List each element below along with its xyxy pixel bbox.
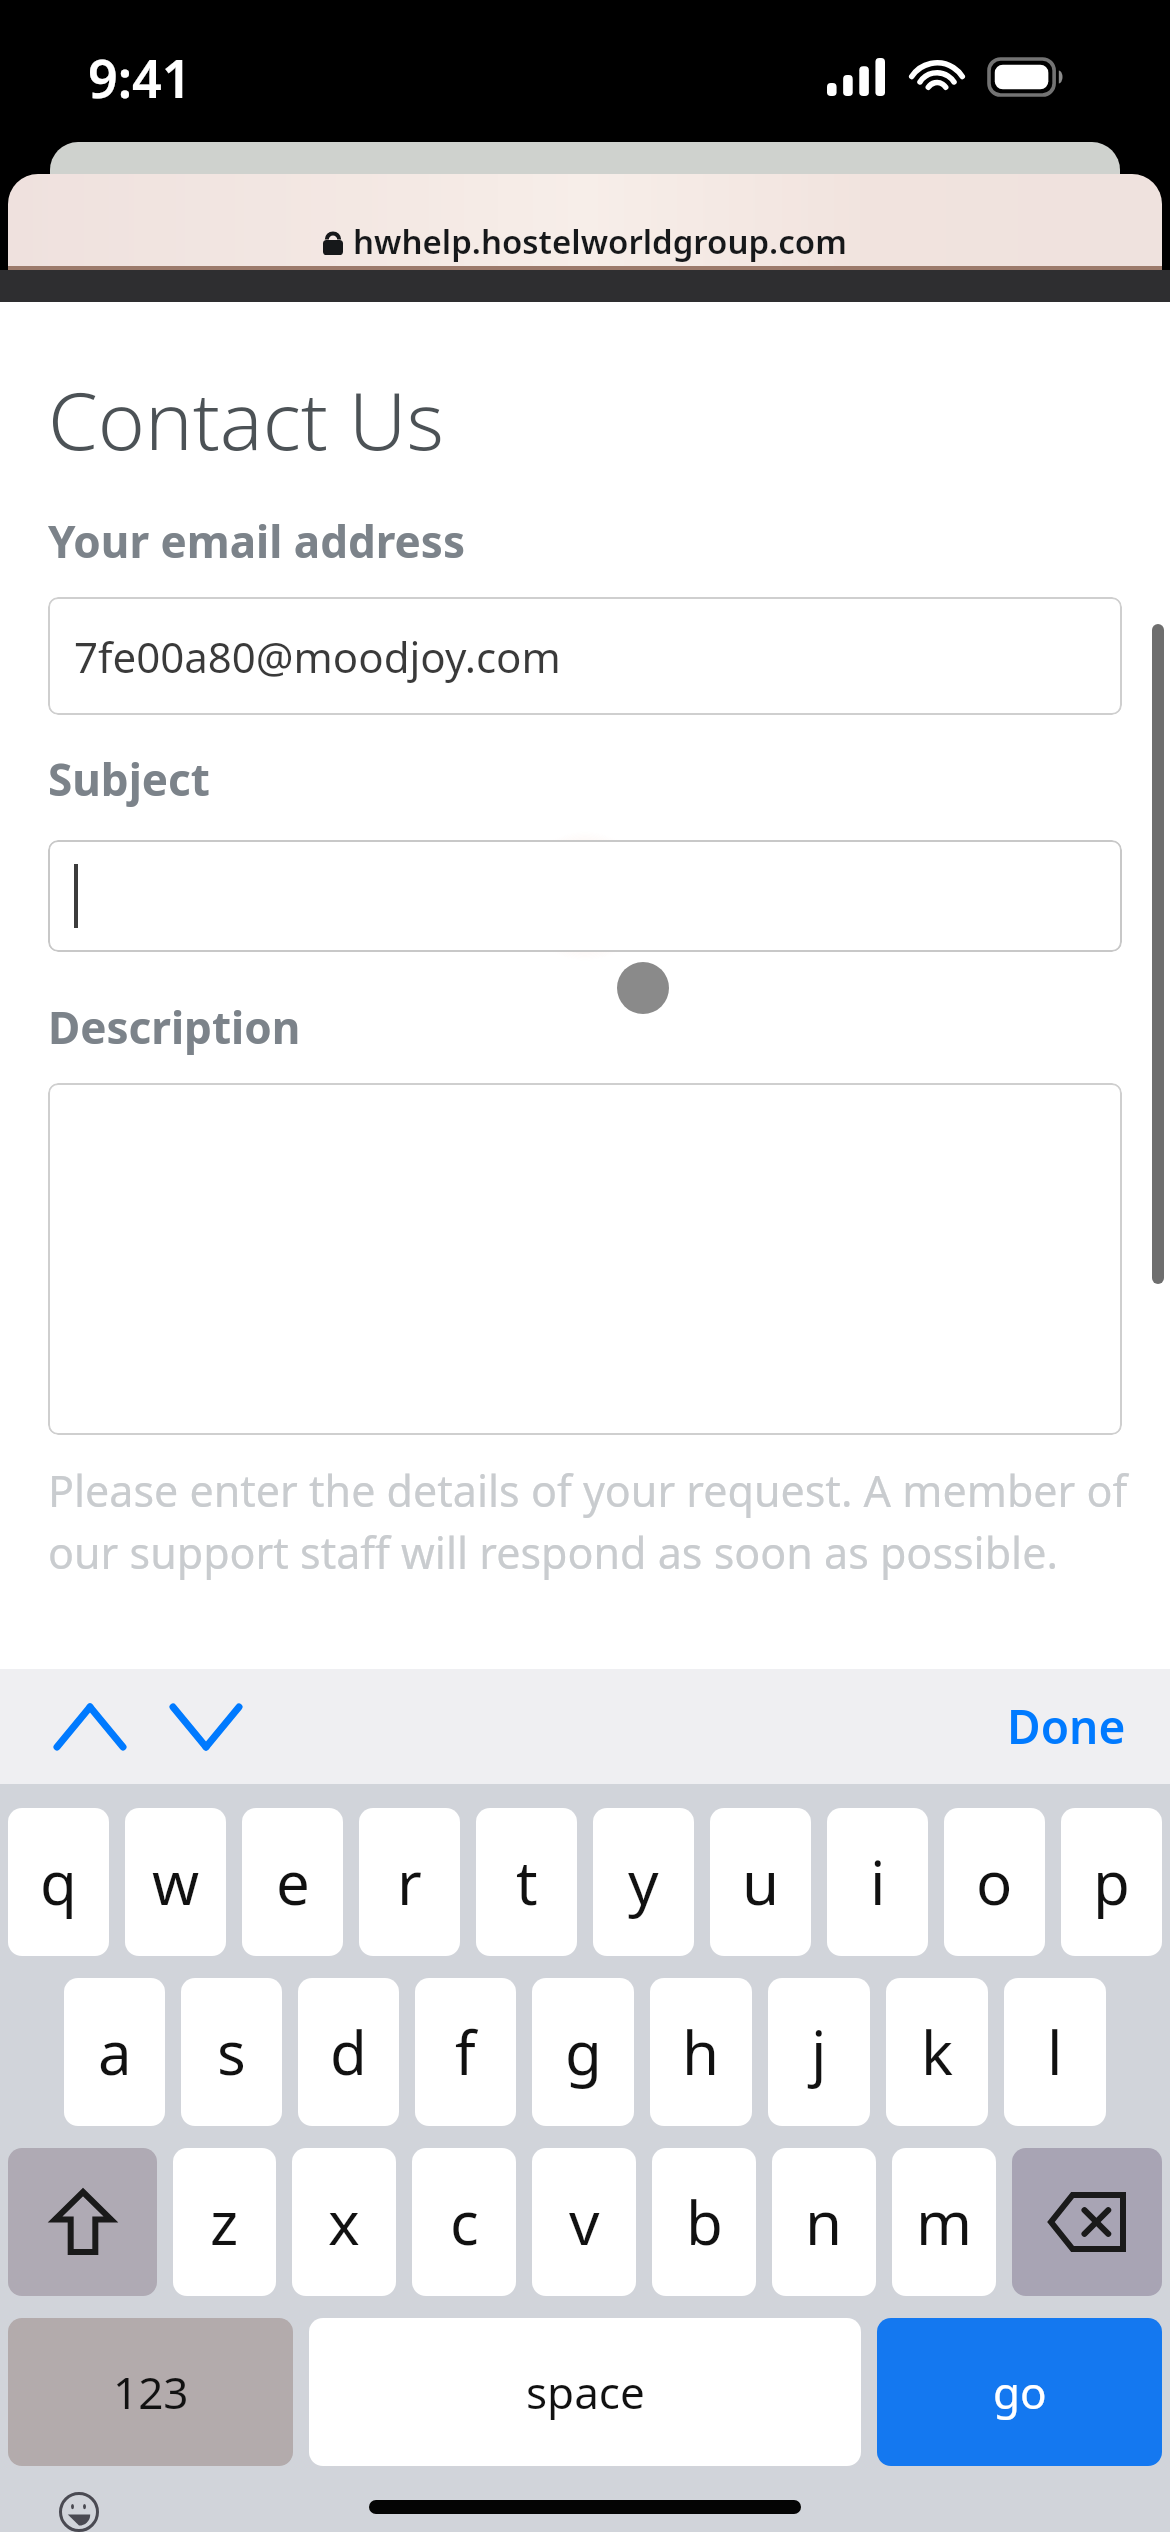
staticText: p	[1093, 1841, 1130, 1923]
button[interactable]: y	[593, 1808, 694, 1956]
button[interactable]: x	[292, 2148, 396, 2296]
button[interactable]: v	[532, 2148, 636, 2296]
button[interactable]: o	[944, 1808, 1045, 1956]
button[interactable]: i	[827, 1808, 928, 1956]
button[interactable]: f	[415, 1978, 516, 2126]
staticText: o	[976, 1841, 1013, 1923]
staticText: Contact Us	[48, 364, 444, 473]
button[interactable]: p	[1061, 1808, 1162, 1956]
button[interactable]: a	[64, 1978, 165, 2126]
button[interactable]: Emoji keyboard	[56, 2492, 128, 2532]
button[interactable]: d	[298, 1978, 399, 2126]
button[interactable]: Shift	[8, 2148, 157, 2296]
staticText: go	[993, 2362, 1047, 2422]
staticText: h	[682, 2011, 720, 2093]
staticText: Subject	[48, 749, 210, 809]
staticText: g	[565, 2011, 602, 2093]
staticText: t	[516, 1841, 538, 1923]
button[interactable]: Backspace	[1012, 2148, 1162, 2296]
button[interactable]: r	[359, 1808, 460, 1956]
button[interactable]: space	[309, 2318, 861, 2466]
staticText: 7fe00a80@moodjoy.com	[74, 628, 561, 685]
button[interactable]: Address bar hwhelp.hostelworldgroup.com	[8, 174, 1162, 270]
button[interactable]: s	[181, 1978, 282, 2126]
button[interactable]	[48, 1083, 1122, 1435]
staticText: 9:41	[88, 42, 192, 113]
staticText: u	[742, 1841, 780, 1923]
staticText: Description	[48, 997, 301, 1057]
button[interactable]: u	[710, 1808, 811, 1956]
button[interactable]: e	[242, 1808, 343, 1956]
staticText: c	[450, 2181, 479, 2263]
button[interactable]: q	[8, 1808, 109, 1956]
staticText: j	[811, 2011, 827, 2093]
staticText: n	[805, 2181, 843, 2263]
button[interactable]: Previous field	[44, 1681, 136, 1773]
staticText: r	[397, 1841, 422, 1923]
button[interactable]	[48, 840, 1122, 952]
staticText: y	[628, 1841, 659, 1923]
button[interactable]: t	[476, 1808, 577, 1956]
staticText: z	[210, 2181, 239, 2263]
button[interactable]: Next field	[160, 1681, 252, 1773]
button[interactable]: c	[412, 2148, 516, 2296]
staticText: w	[152, 1841, 200, 1923]
staticText: Please enter the details of your request…	[48, 1461, 1128, 1581]
button[interactable]: b	[652, 2148, 756, 2296]
staticText: d	[330, 2011, 367, 2093]
button[interactable]: z	[173, 2148, 276, 2296]
button[interactable]: h	[650, 1978, 752, 2126]
staticText: x	[328, 2181, 360, 2263]
button[interactable]: n	[772, 2148, 876, 2296]
staticText: Done	[1007, 1695, 1126, 1758]
staticText: k	[921, 2011, 954, 2093]
staticText: q	[40, 1841, 77, 1923]
staticText: b	[686, 2181, 723, 2263]
button[interactable]: l	[1004, 1978, 1106, 2126]
staticText: e	[276, 1841, 310, 1923]
staticText: space	[526, 2362, 645, 2422]
staticText: hwhelp.hostelworldgroup.com	[353, 219, 847, 264]
button[interactable]: w	[125, 1808, 226, 1956]
staticText: s	[217, 2011, 246, 2093]
staticText: 123	[113, 2362, 189, 2422]
button[interactable]: 7fe00a80@moodjoy.com	[48, 597, 1122, 715]
button[interactable]: go	[877, 2318, 1162, 2466]
staticText: f	[455, 2011, 476, 2093]
button[interactable]: 123	[8, 2318, 293, 2466]
button[interactable]: m	[892, 2148, 996, 2296]
staticText: i	[870, 1841, 886, 1923]
staticText: a	[98, 2011, 132, 2093]
staticText: l	[1047, 2011, 1063, 2093]
staticText: Your email address	[48, 511, 465, 571]
button[interactable]: Done	[993, 1685, 1140, 1768]
button[interactable]: g	[532, 1978, 634, 2126]
button[interactable]: j	[768, 1978, 870, 2126]
staticText: m	[916, 2181, 973, 2263]
button[interactable]: k	[886, 1978, 988, 2126]
staticText: v	[569, 2181, 600, 2263]
